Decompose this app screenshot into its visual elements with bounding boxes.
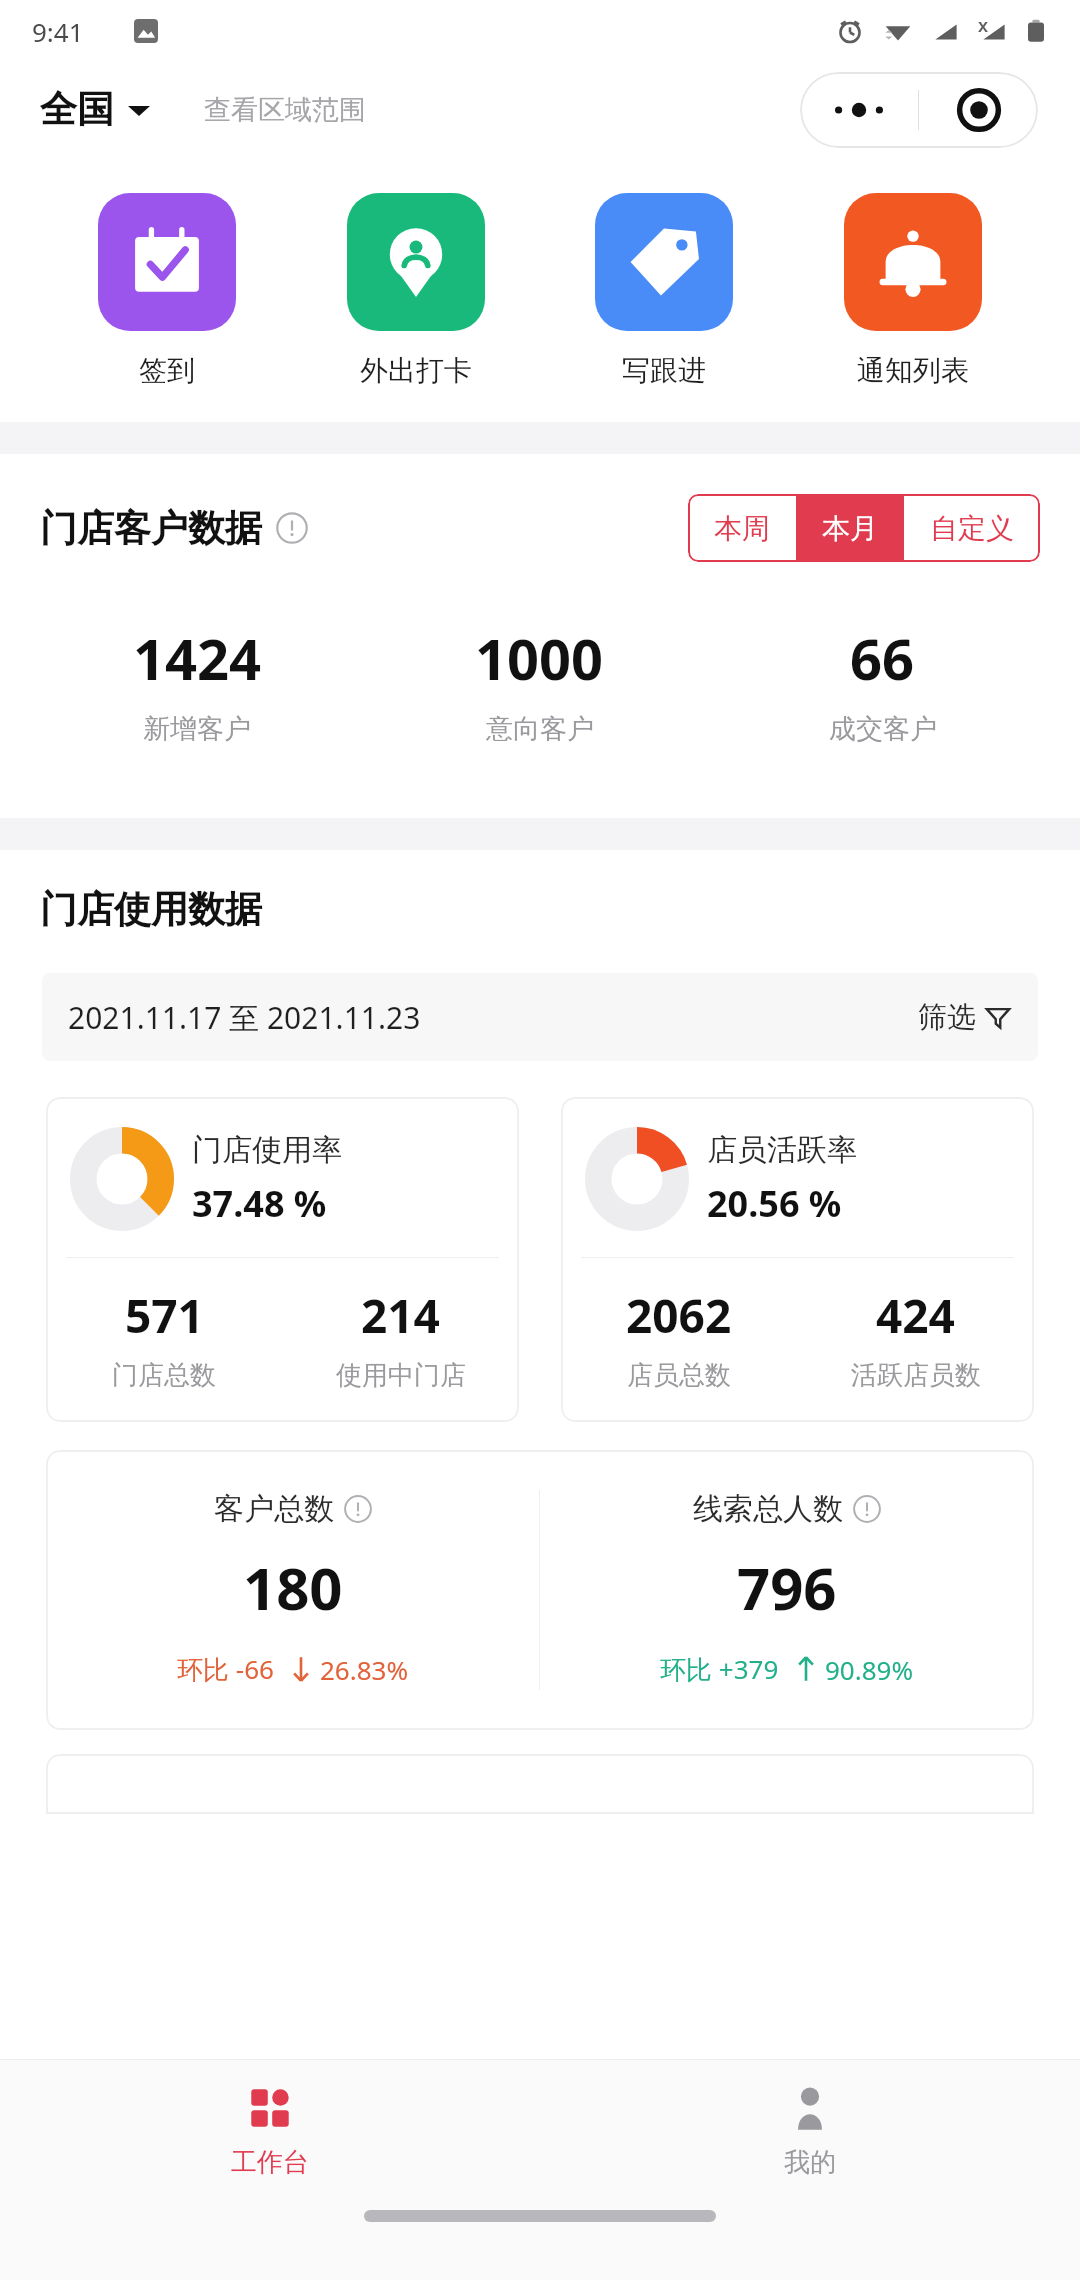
staticText: 1424 xyxy=(133,620,262,696)
staticText: 2062 xyxy=(626,1284,732,1347)
staticText: 写跟进 xyxy=(622,353,706,388)
button[interactable]: 线索总人数 xyxy=(540,1490,1034,1687)
button[interactable]: Info xyxy=(276,512,308,544)
button[interactable]: More options xyxy=(800,72,918,148)
staticText: 本月 xyxy=(822,511,878,546)
staticText: 66 xyxy=(850,620,915,696)
staticText: 工作台 xyxy=(231,2146,309,2179)
staticText: 796 xyxy=(737,1548,837,1627)
staticText: 门店客户数据 xyxy=(40,505,262,552)
staticText: 自定义 xyxy=(930,511,1014,546)
button[interactable]: 外出打卡 xyxy=(335,193,497,388)
staticText: X xyxy=(978,16,989,36)
staticText: 店员总数 xyxy=(627,1359,731,1392)
staticText: 20.56 % xyxy=(707,1179,842,1228)
staticText: 180 xyxy=(243,1548,343,1627)
staticText: 外出打卡 xyxy=(360,353,472,388)
button[interactable]: 查看区域范围 xyxy=(204,93,366,127)
button[interactable]: 写跟进 xyxy=(583,193,745,388)
button[interactable]: 1000 xyxy=(368,620,711,746)
staticText: 全国 xyxy=(40,86,114,133)
button[interactable]: 工作台 xyxy=(0,2060,540,2179)
staticText: 使用中门店 xyxy=(336,1359,466,1392)
staticText: 26.83% xyxy=(320,1652,409,1687)
button[interactable]: 全国 xyxy=(40,86,150,133)
staticText: 成交客户 xyxy=(829,712,937,746)
button[interactable]: 店员活跃率 xyxy=(561,1097,1034,1422)
staticText: 37.48 % xyxy=(192,1179,327,1228)
staticText: 活跃店员数 xyxy=(851,1359,981,1392)
staticText: 门店使用数据 xyxy=(40,886,262,933)
button[interactable]: 本月 xyxy=(796,494,904,562)
button[interactable]: 2021.11.17 至 2021.11.23 xyxy=(42,973,1038,1061)
staticText: 通知列表 xyxy=(857,353,969,388)
button[interactable]: 本周 xyxy=(688,494,796,562)
button[interactable]: 客户总数 xyxy=(46,1490,539,1687)
button[interactable]: 通知列表 xyxy=(832,193,994,388)
staticText: 2021.11.17 至 2021.11.23 xyxy=(68,997,421,1038)
staticText: 客户总数 xyxy=(214,1490,334,1528)
staticText: 签到 xyxy=(139,353,195,388)
staticText: 571 xyxy=(125,1284,204,1347)
staticText: 9:41 xyxy=(32,14,84,49)
staticText: 新增客户 xyxy=(143,712,251,746)
staticText: 意向客户 xyxy=(486,712,594,746)
staticText: 筛选 xyxy=(918,999,976,1036)
staticText: 本周 xyxy=(714,511,770,546)
button[interactable]: 66 xyxy=(711,620,1054,746)
staticText: 环比 -66 xyxy=(177,1651,274,1687)
button[interactable]: 签到 xyxy=(86,193,248,388)
button[interactable]: 我的 xyxy=(540,2060,1080,2179)
staticText: 424 xyxy=(876,1284,955,1347)
button[interactable]: Close xyxy=(919,72,1038,148)
staticText: 门店使用率 xyxy=(192,1131,342,1169)
staticText: 线索总人数 xyxy=(693,1490,843,1528)
staticText: 环比 +379 xyxy=(660,1651,779,1687)
staticText: 店员活跃率 xyxy=(707,1131,857,1169)
staticText: 1000 xyxy=(475,620,604,696)
button[interactable]: 门店使用率 xyxy=(46,1097,519,1422)
button[interactable]: 自定义 xyxy=(904,494,1040,562)
staticText: 门店总数 xyxy=(112,1359,216,1392)
staticText: 214 xyxy=(361,1284,440,1347)
button[interactable]: 1424 xyxy=(26,620,368,746)
staticText: 90.89% xyxy=(825,1652,914,1687)
staticText: 我的 xyxy=(784,2146,836,2179)
